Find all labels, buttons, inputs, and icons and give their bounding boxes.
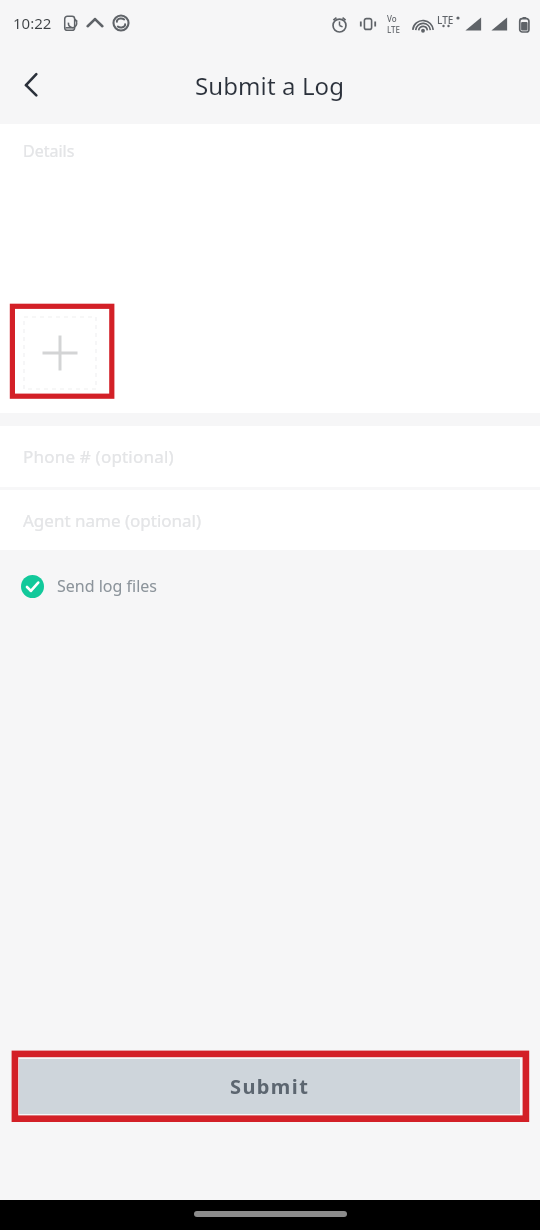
staticText: LTE xyxy=(437,13,454,27)
staticText: Submit xyxy=(230,1073,310,1100)
staticText: Vo xyxy=(387,13,397,24)
button[interactable]: Agent name (optional) xyxy=(0,490,540,550)
staticText: Agent name (optional) xyxy=(23,509,202,532)
staticText: Phone # (optional) xyxy=(23,445,174,468)
button[interactable]: Send log files xyxy=(0,550,540,622)
staticText: Details xyxy=(23,140,75,162)
staticText: LTE xyxy=(387,24,401,35)
staticText: Send log files xyxy=(57,575,157,597)
button[interactable]: Phone # (optional) xyxy=(0,426,540,487)
staticText: Submit a Log xyxy=(195,69,345,102)
button[interactable]: Add photo xyxy=(24,317,96,389)
staticText: 10:22 xyxy=(13,13,52,33)
button[interactable]: Back xyxy=(7,62,55,110)
button[interactable]: Submit xyxy=(19,1059,520,1114)
